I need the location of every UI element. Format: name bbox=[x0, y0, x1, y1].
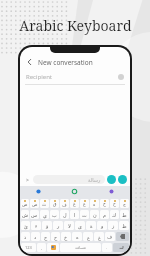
staticText: . bbox=[106, 245, 108, 250]
button[interactable]: خ bbox=[61, 232, 71, 241]
button[interactable]: م bbox=[100, 210, 109, 219]
button[interactable]: ذ bbox=[21, 232, 30, 241]
button[interactable]: Add contact bbox=[118, 74, 124, 80]
staticText: ش bbox=[22, 212, 29, 218]
staticText: ث bbox=[42, 202, 47, 207]
button[interactable]: ت bbox=[80, 210, 89, 219]
staticText: غ bbox=[98, 234, 101, 240]
staticText: ف bbox=[107, 234, 113, 240]
button[interactable]: رسالة bbox=[33, 175, 105, 184]
button[interactable]: ب bbox=[50, 210, 59, 219]
staticText: ط bbox=[122, 212, 127, 218]
button[interactable]: لا bbox=[64, 221, 74, 230]
button[interactable]: ض bbox=[21, 199, 29, 208]
button[interactable]: ز bbox=[108, 221, 118, 230]
button[interactable]: ع bbox=[80, 199, 89, 208]
button[interactable]: س bbox=[30, 210, 39, 219]
button[interactable]: ل bbox=[60, 210, 69, 219]
staticText: م bbox=[103, 212, 107, 218]
button[interactable]: ث bbox=[40, 199, 49, 208]
staticText: ل bbox=[63, 212, 67, 218]
button[interactable]: ك bbox=[110, 210, 119, 219]
button[interactable]: 123 bbox=[21, 243, 36, 252]
button[interactable]: Back bbox=[20, 54, 130, 70]
button[interactable]: ئ bbox=[21, 221, 30, 230]
button[interactable]: Attach bbox=[23, 176, 31, 184]
staticText: ك bbox=[112, 212, 117, 218]
button[interactable]: ح bbox=[51, 232, 60, 241]
staticText: ء bbox=[35, 223, 38, 229]
staticText: ص bbox=[32, 202, 38, 207]
staticText: ؤ bbox=[46, 223, 49, 229]
button[interactable]: Backspace bbox=[116, 232, 129, 241]
button[interactable]: Themes bbox=[93, 186, 130, 197]
button[interactable]: ر bbox=[53, 221, 63, 230]
button[interactable]: ط bbox=[120, 210, 129, 219]
button[interactable]: Emoji bbox=[107, 175, 116, 184]
button[interactable]: ن bbox=[90, 210, 99, 219]
button[interactable]: خ bbox=[100, 199, 109, 208]
button[interactable]: ف bbox=[60, 199, 69, 208]
button[interactable]: ه bbox=[72, 232, 82, 241]
button[interactable]: Settings bbox=[20, 186, 56, 197]
staticText: ح bbox=[54, 234, 58, 240]
staticText: ب bbox=[52, 212, 57, 218]
button[interactable]: ق bbox=[50, 199, 59, 208]
staticText: Arabic Keyboard bbox=[19, 16, 132, 35]
button[interactable]: ؤ bbox=[42, 221, 52, 230]
staticText: ن bbox=[93, 212, 97, 218]
button[interactable]: Recipient bbox=[20, 70, 130, 84]
button[interactable]: Enter bbox=[113, 243, 129, 252]
staticText: ق bbox=[53, 202, 57, 207]
button[interactable]: ى bbox=[75, 221, 85, 230]
button[interactable]: , bbox=[37, 243, 46, 252]
button[interactable]: ص bbox=[30, 199, 39, 208]
staticText: ي bbox=[43, 212, 47, 218]
button[interactable]: Emoji keyboard bbox=[47, 243, 59, 252]
staticText: ت bbox=[82, 212, 87, 218]
staticText: ر bbox=[57, 223, 60, 229]
staticText: و bbox=[101, 223, 104, 229]
staticText: ف bbox=[62, 202, 67, 207]
button[interactable]: ء bbox=[31, 221, 41, 230]
button[interactable]: د bbox=[31, 232, 40, 241]
staticText: ه bbox=[76, 234, 79, 240]
button[interactable]: Send bbox=[118, 175, 127, 184]
staticText: ا bbox=[74, 212, 76, 218]
staticText: > bbox=[26, 177, 29, 184]
button[interactable]: ا bbox=[70, 210, 79, 219]
staticText: ذ bbox=[24, 234, 27, 240]
staticText: ح bbox=[113, 202, 116, 207]
button[interactable]: و bbox=[97, 221, 107, 230]
staticText: ز bbox=[112, 223, 115, 229]
staticText: رسالة bbox=[88, 177, 101, 183]
button[interactable]: ه bbox=[90, 199, 99, 208]
button[interactable]: ج bbox=[120, 199, 129, 208]
staticText: د bbox=[34, 234, 37, 240]
staticText: Recipient bbox=[26, 73, 53, 81]
staticText: ع bbox=[83, 202, 86, 207]
button[interactable]: ي bbox=[40, 210, 49, 219]
button[interactable]: Back bbox=[25, 57, 35, 67]
button[interactable]: ظ bbox=[119, 221, 129, 230]
staticText: ئ bbox=[24, 223, 28, 229]
button[interactable]: غ bbox=[70, 199, 79, 208]
button[interactable]: ة bbox=[86, 221, 96, 230]
staticText: ج bbox=[44, 234, 48, 240]
button[interactable]: Voice input bbox=[56, 186, 93, 197]
button[interactable]: ش bbox=[21, 210, 29, 219]
staticText: س bbox=[31, 212, 38, 218]
button[interactable]: ح bbox=[110, 199, 119, 208]
staticText: New conversation bbox=[38, 58, 93, 67]
staticText: ه bbox=[93, 202, 96, 207]
staticText: ض bbox=[22, 202, 28, 207]
button[interactable]: ف bbox=[105, 232, 115, 241]
button[interactable]: ع bbox=[83, 232, 93, 241]
staticText: , bbox=[41, 245, 43, 250]
button[interactable]: ج bbox=[41, 232, 50, 241]
button[interactable]: مسافة bbox=[60, 243, 101, 252]
button[interactable]: . bbox=[102, 243, 112, 252]
staticText: ع bbox=[87, 234, 90, 240]
staticText: مسافة bbox=[75, 245, 86, 250]
button[interactable]: غ bbox=[94, 232, 104, 241]
